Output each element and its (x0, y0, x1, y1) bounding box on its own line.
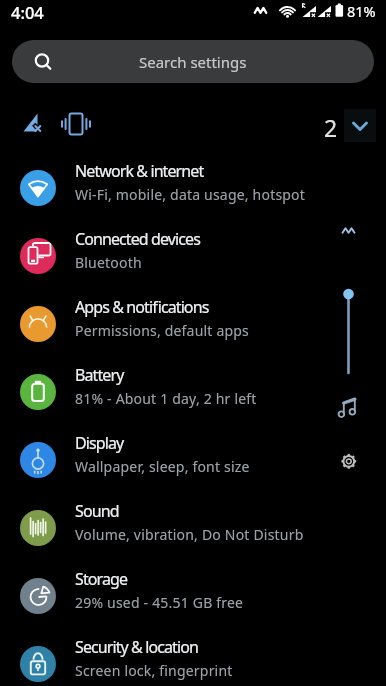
staticText: Connected devices (75, 228, 200, 250)
staticText: Volume, vibration, Do Not Disturb (75, 525, 304, 544)
staticText: 2 (324, 112, 338, 143)
button[interactable]: Battery (0, 358, 386, 426)
staticText: Network & internet (75, 160, 204, 182)
staticText: Wallpaper, sleep, font size (75, 457, 250, 476)
button[interactable]: Storage (0, 562, 386, 630)
button[interactable]: Search settings (12, 40, 374, 83)
staticText: Sound (75, 500, 119, 522)
staticText: Security & location (75, 636, 198, 658)
staticText: Screen lock, fingerprint (75, 661, 233, 680)
button[interactable] (344, 109, 376, 142)
button[interactable]: Network & internet (0, 154, 386, 222)
button[interactable]: Apps & notifications (0, 290, 386, 358)
button[interactable]: Connected devices (0, 222, 386, 290)
staticText: Display (75, 432, 124, 454)
staticText: Battery (75, 364, 124, 386)
staticText: Search settings (139, 52, 247, 72)
staticText: 81% (347, 1, 376, 21)
staticText: Permissions, default apps (75, 321, 250, 340)
staticText: 29% used - 45.51 GB free (75, 593, 244, 612)
staticText: Bluetooth (75, 253, 142, 272)
staticText: Storage (75, 568, 128, 590)
button[interactable]: Sound (0, 494, 386, 562)
button[interactable]: Security & location (0, 630, 386, 686)
staticText: Wi-Fi, mobile, data usage, hotspot (75, 185, 306, 204)
staticText: 4:04 (11, 1, 44, 23)
staticText: Apps & notifications (75, 296, 209, 318)
staticText: 81% - About 1 day, 2 hr left (75, 389, 257, 408)
button[interactable]: Display (0, 426, 386, 494)
